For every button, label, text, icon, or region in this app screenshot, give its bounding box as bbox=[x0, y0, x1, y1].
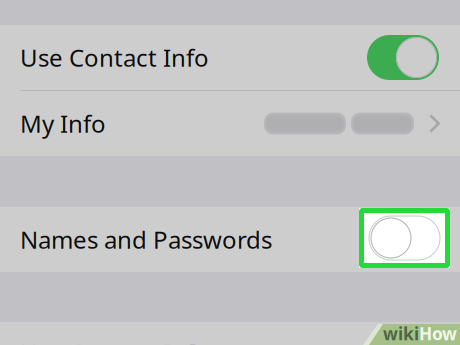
button[interactable]: Use Contact Info bbox=[0, 322, 460, 345]
button[interactable]: Use Contact Info bbox=[0, 25, 460, 90]
button[interactable]: My Info bbox=[0, 91, 460, 156]
staticText: Names and Passwords bbox=[20, 224, 272, 255]
staticText: wiki bbox=[383, 322, 419, 345]
button[interactable]: Names and Passwords bbox=[0, 207, 460, 272]
staticText: How bbox=[419, 322, 457, 345]
button[interactable]: Names and Passwords, off bbox=[359, 208, 450, 268]
staticText: My Info bbox=[20, 108, 106, 139]
staticText: Use Contact Info bbox=[20, 42, 209, 73]
